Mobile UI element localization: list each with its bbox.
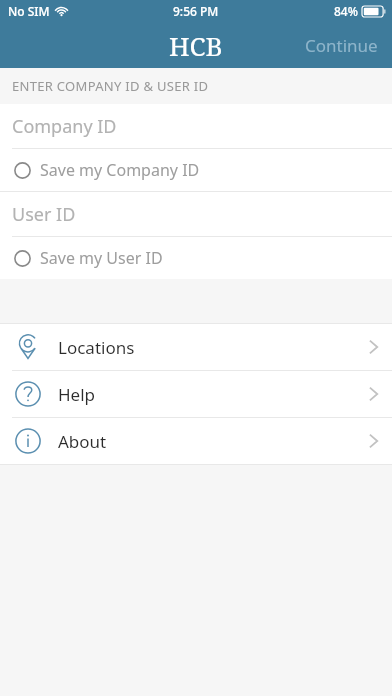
staticText: Company ID bbox=[12, 114, 117, 139]
staticText: HCB bbox=[169, 28, 223, 63]
staticText: 9:56 PM bbox=[173, 3, 219, 19]
button[interactable]: Save my Company ID bbox=[0, 149, 392, 191]
staticText: Locations bbox=[58, 336, 135, 359]
staticText: Help bbox=[58, 383, 96, 406]
staticText: User ID bbox=[12, 202, 76, 227]
staticText: Save my Company ID bbox=[40, 159, 200, 181]
button[interactable]: Locations bbox=[0, 324, 392, 370]
button[interactable]: About bbox=[0, 418, 392, 464]
button[interactable]: Continue bbox=[291, 26, 392, 65]
staticText: 84% bbox=[334, 3, 358, 19]
staticText: No SIM bbox=[8, 3, 50, 19]
button[interactable]: Help bbox=[0, 371, 392, 417]
staticText: Save my User ID bbox=[40, 247, 163, 269]
button[interactable]: Save my User ID bbox=[0, 237, 392, 279]
staticText: Continue bbox=[305, 34, 378, 57]
staticText: ENTER COMPANY ID & USER ID bbox=[12, 77, 209, 95]
staticText: About bbox=[58, 430, 107, 453]
button[interactable]: User ID bbox=[0, 192, 392, 236]
button[interactable]: Company ID bbox=[0, 104, 392, 148]
